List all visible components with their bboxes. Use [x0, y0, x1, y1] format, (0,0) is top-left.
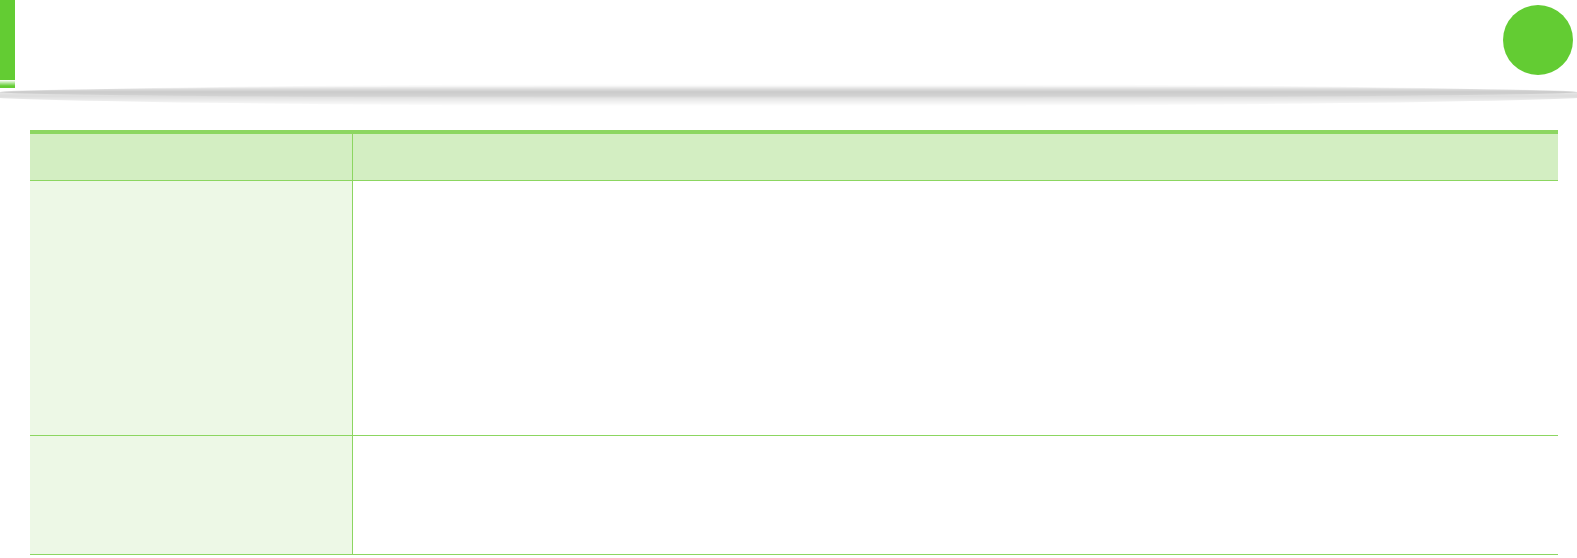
button[interactable] [30, 436, 1558, 554]
button[interactable] [0, 0, 15, 88]
button[interactable] [30, 181, 1558, 435]
button[interactable]: Account [1503, 5, 1573, 75]
